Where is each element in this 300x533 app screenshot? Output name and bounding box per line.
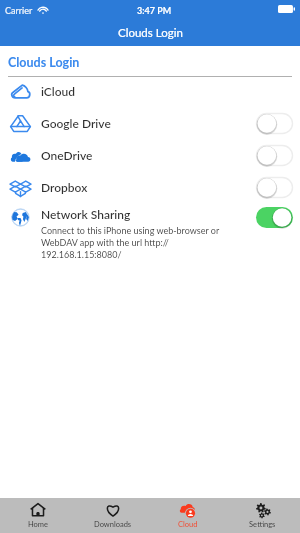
staticText: Settings bbox=[249, 520, 276, 529]
button[interactable]: Toggle on bbox=[256, 207, 293, 228]
staticText: 3:47 PM bbox=[137, 5, 172, 16]
staticText: Google Drive bbox=[41, 116, 111, 130]
staticText: Clouds Login bbox=[8, 55, 80, 70]
staticText: OneDrive bbox=[41, 148, 93, 162]
staticText: Home bbox=[28, 520, 48, 529]
button[interactable]: Network Sharing bbox=[0, 203, 300, 260]
button[interactable]: Toggle off bbox=[256, 113, 293, 134]
staticText: Clouds Login bbox=[118, 26, 183, 40]
button[interactable]: Cloud bbox=[150, 498, 225, 533]
staticText: Network Sharing bbox=[41, 207, 131, 221]
button[interactable]: Downloads bbox=[75, 498, 150, 533]
button[interactable]: iCloud bbox=[0, 75, 300, 107]
staticText: Connect to this iPhone using web-browser… bbox=[41, 225, 240, 260]
button[interactable]: Settings bbox=[225, 498, 300, 533]
staticText: Cloud bbox=[178, 520, 198, 529]
button[interactable]: Home bbox=[0, 498, 75, 533]
button[interactable]: Toggle off bbox=[256, 145, 293, 166]
button[interactable]: OneDrive bbox=[0, 139, 300, 171]
staticText: iCloud bbox=[41, 84, 76, 98]
staticText: Dropbox bbox=[41, 180, 88, 194]
button[interactable]: Dropbox bbox=[0, 171, 300, 203]
staticText: Downloads bbox=[94, 520, 132, 529]
button[interactable]: Google Drive bbox=[0, 107, 300, 139]
staticText: Carrier bbox=[5, 5, 33, 16]
button[interactable]: Toggle off bbox=[256, 177, 293, 198]
